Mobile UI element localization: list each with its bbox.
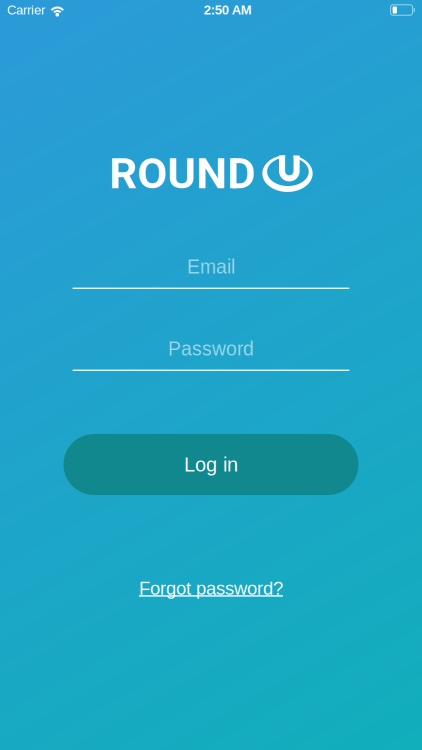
staticText: Carrier	[7, 3, 45, 17]
staticText: 2:50 AM	[204, 3, 252, 17]
staticText: Email	[187, 256, 235, 278]
button[interactable]: Log in	[63, 434, 358, 495]
staticText: Forgot password?	[139, 578, 283, 599]
button[interactable]: Forgot password?	[139, 578, 283, 599]
staticText: Password	[168, 338, 254, 360]
staticText: ROUND	[109, 148, 255, 199]
staticText: Log in	[184, 453, 238, 476]
